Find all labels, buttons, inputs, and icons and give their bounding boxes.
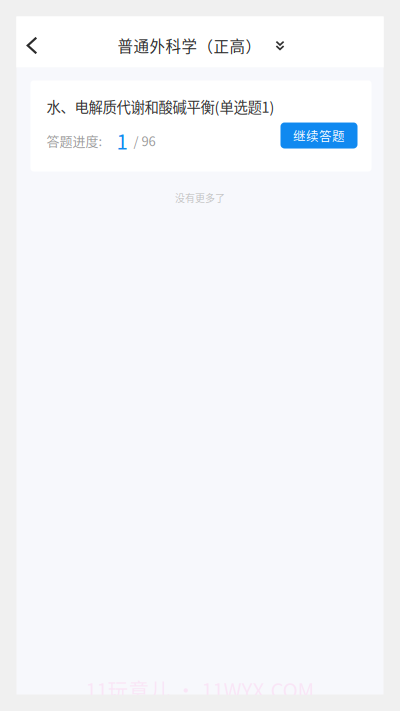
button[interactable]: 普通外科学（正高） xyxy=(109,23,292,67)
staticText: / 96 xyxy=(133,131,155,150)
button[interactable]: 水、电解质代谢和酸碱平衡(单选题1) xyxy=(30,80,371,171)
button[interactable]: Back xyxy=(15,23,48,67)
staticText: 普通外科学（正高） xyxy=(117,34,261,57)
staticText: 11玩意儿 · 11WYX.COM xyxy=(85,674,314,704)
staticText: 继续答题 xyxy=(293,126,345,145)
staticText: 答题进度: xyxy=(46,131,102,150)
staticText: 水、电解质代谢和酸碱平衡(单选题1) xyxy=(46,96,274,117)
staticText: 没有更多了 xyxy=(175,190,225,205)
staticText: 1 xyxy=(116,126,127,155)
button[interactable]: 继续答题 xyxy=(280,122,357,148)
